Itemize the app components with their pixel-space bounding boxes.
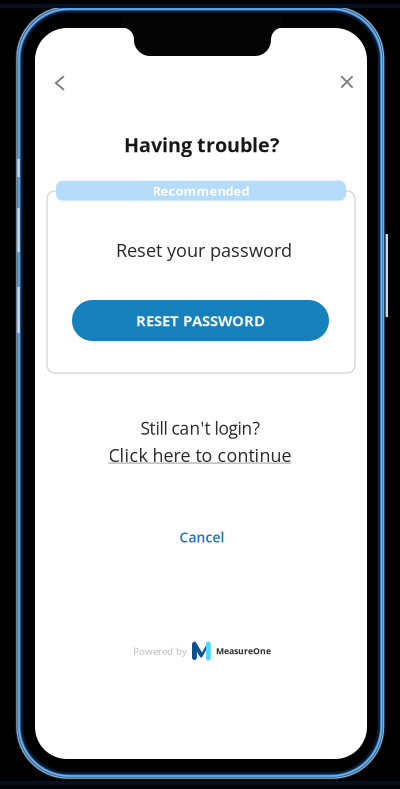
staticText: Powered by xyxy=(133,644,187,658)
staticText: Recommended xyxy=(152,182,249,199)
staticText: Having trouble? xyxy=(124,131,279,158)
staticText: RESET PASSWORD xyxy=(136,310,265,331)
button[interactable]: RESET PASSWORD xyxy=(72,300,329,341)
staticText: Click here to continue xyxy=(108,443,291,467)
button[interactable]: Close xyxy=(324,59,370,105)
button[interactable]: Click here to continue xyxy=(108,443,291,467)
staticText: Still can't login? xyxy=(140,416,259,440)
staticText: Reset your password xyxy=(116,238,292,262)
staticText: MeasureOne xyxy=(216,645,271,657)
button[interactable]: Cancel xyxy=(167,524,237,550)
staticText: Cancel xyxy=(179,528,224,546)
button[interactable]: Back xyxy=(37,60,83,106)
